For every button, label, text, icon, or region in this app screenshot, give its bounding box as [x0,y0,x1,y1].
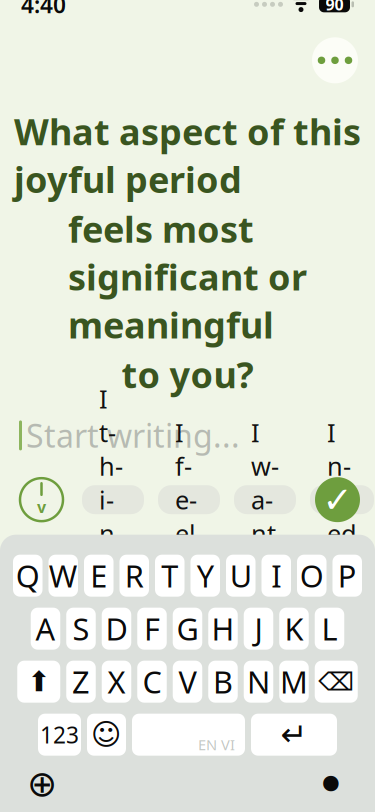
button[interactable]: C [137,661,167,703]
staticText: G [176,608,198,649]
button[interactable]: Y [190,555,220,597]
button[interactable]: ⬆ [17,661,60,703]
staticText: to you? [121,350,253,398]
staticText: Z [72,661,90,702]
staticText: A [35,608,55,649]
staticText: K [284,608,303,649]
staticText: V [178,661,196,702]
staticText: L [321,608,337,649]
button[interactable]: Switch keyboard [20,762,64,806]
staticText: I want... [251,416,279,584]
button[interactable]: V [173,661,202,703]
button[interactable]: U [226,555,255,597]
staticText: EN VI [198,735,235,754]
staticText: 123 [40,720,79,750]
staticText: Start writing... [26,414,240,457]
button[interactable]: Hide keyboard [20,478,63,521]
staticText: ⬆ [27,666,50,698]
staticText: ☺ [91,718,122,751]
button[interactable]: Q [13,555,42,597]
button[interactable]: R [119,555,149,597]
staticText: v [37,496,46,517]
staticText: ↵ [280,716,307,753]
button[interactable]: J [244,608,273,650]
button[interactable]: More options [312,37,358,83]
staticText: I think... [99,382,127,617]
staticText: I need... [327,416,357,584]
button[interactable]: 123 [38,714,81,756]
staticText: W [49,555,78,596]
staticText: Q [16,555,40,596]
button[interactable]: Space [132,714,245,756]
button[interactable]: N [244,661,273,703]
button[interactable]: Z [66,661,96,703]
staticText: U [230,555,252,596]
button[interactable]: K [279,608,309,650]
staticText: feels most significant or meaningful [68,205,307,348]
button[interactable]: ☺ [87,714,126,756]
staticText: ⊕ [27,763,57,804]
staticText: ✓ [322,479,352,520]
staticText: S [72,608,89,649]
button[interactable]: F [137,608,167,650]
staticText: What aspect of this joyful period [14,107,361,203]
staticText: I feel... [175,416,203,584]
button[interactable]: T [155,555,184,597]
staticText: P [338,555,357,596]
staticText: M [280,661,308,702]
button[interactable]: I think... [82,485,144,514]
staticText: X [107,661,125,702]
button[interactable]: H [208,608,238,650]
staticText: F [144,608,160,649]
button[interactable]: O [297,555,326,597]
button[interactable]: G [173,608,202,650]
staticText: 4:40 [21,0,66,19]
button[interactable]: X [102,661,131,703]
staticText: ⏺ [322,767,339,800]
staticText: C [142,661,161,702]
button[interactable]: ⌫ [315,661,358,703]
button[interactable]: W [48,555,78,597]
button[interactable]: L [315,608,344,650]
button[interactable]: E [84,555,113,597]
button[interactable]: M [279,661,309,703]
button[interactable]: S [66,608,96,650]
button[interactable]: A [31,608,60,650]
button[interactable]: P [332,555,362,597]
button[interactable]: D [102,608,131,650]
button[interactable]: Done [315,477,360,522]
staticText: J [254,608,262,649]
button[interactable]: I [261,555,291,597]
button[interactable]: ↵ [251,714,337,756]
staticText: B [213,661,233,702]
staticText: ⌫ [318,667,354,696]
staticText: O [300,555,324,596]
staticText: R [125,555,144,596]
staticText: N [247,661,270,702]
staticText: Y [197,555,214,596]
staticText: D [105,608,127,649]
button[interactable]: I feel... [158,485,220,514]
staticText: 90 [325,0,343,15]
button[interactable]: I want... [234,485,296,514]
staticText: I [271,555,281,596]
staticText: H [211,608,234,649]
staticText: T [161,555,178,596]
button[interactable]: B [208,661,238,703]
button[interactable]: Dictate [309,762,353,806]
button[interactable]: I need... [310,485,374,514]
staticText: E [90,555,107,596]
